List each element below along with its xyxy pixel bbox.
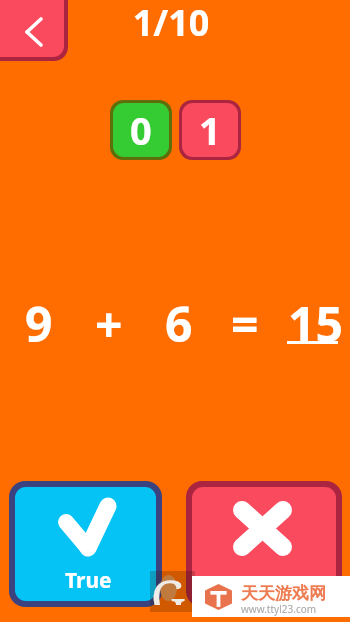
button[interactable]: 1 — [182, 103, 238, 157]
button[interactable]: 0 — [113, 103, 169, 157]
staticText: 9 — [25, 291, 53, 356]
staticText: 0 — [130, 104, 152, 156]
staticText: www.ttyl23.com — [241, 602, 317, 616]
staticText: + — [95, 291, 123, 356]
staticText: 15 — [288, 291, 343, 356]
button[interactable]: Back — [0, 0, 64, 57]
staticText: = — [231, 291, 259, 356]
staticText: 天天游戏网 — [241, 583, 326, 604]
button[interactable]: False — [192, 487, 336, 601]
staticText: G — [151, 564, 186, 605]
staticText: 1 — [199, 104, 221, 156]
staticText: True — [65, 566, 112, 595]
staticText: 1/10 — [0, 0, 346, 47]
staticText: 6 — [165, 291, 193, 356]
button[interactable]: True — [15, 487, 156, 601]
